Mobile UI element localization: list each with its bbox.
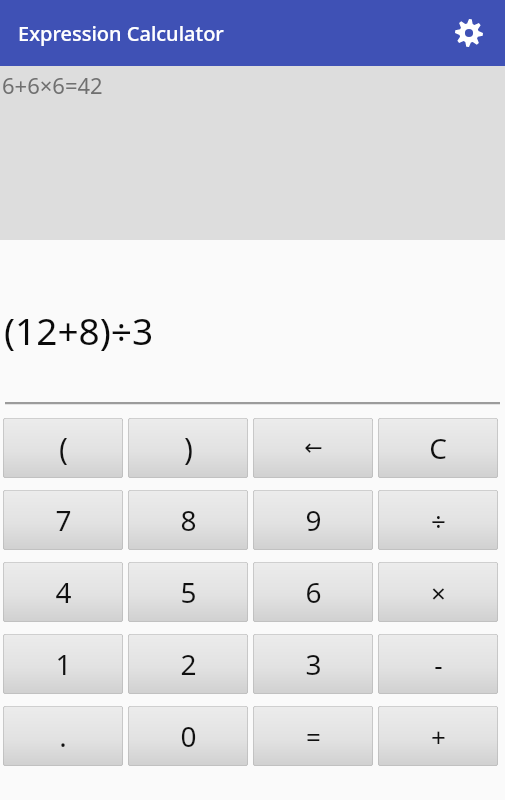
staticText: 2 (180, 645, 197, 683)
staticText: = (306, 719, 321, 754)
button[interactable]: 6+6×6=42 (0, 66, 505, 240)
button[interactable]: ( (3, 418, 123, 478)
staticText: 3 (305, 645, 322, 683)
button[interactable]: 8 (128, 490, 248, 550)
button[interactable]: 7 (3, 490, 123, 550)
button[interactable]: + (378, 706, 498, 766)
button[interactable]: 3 (253, 634, 373, 694)
button[interactable]: ) (128, 418, 248, 478)
button[interactable]: 4 (3, 562, 123, 622)
button[interactable]: = (253, 706, 373, 766)
staticText: ( (59, 428, 68, 469)
staticText: 6 (305, 573, 322, 611)
staticText: ← (304, 435, 323, 461)
button[interactable]: 6 (253, 562, 373, 622)
button[interactable]: 9 (253, 490, 373, 550)
staticText: 9 (305, 501, 322, 539)
button[interactable]: Settings (445, 9, 493, 57)
button[interactable]: 2 (128, 634, 248, 694)
button[interactable]: 1 (3, 634, 123, 694)
staticText: 1 (55, 645, 72, 683)
staticText: 0 (180, 717, 197, 755)
button[interactable]: × (378, 562, 498, 622)
button[interactable]: . (3, 706, 123, 766)
button[interactable]: - (378, 634, 498, 694)
staticText: ÷ (431, 503, 446, 538)
staticText: - (434, 647, 443, 682)
button[interactable]: 5 (128, 562, 248, 622)
button[interactable]: C (378, 418, 498, 478)
staticText: × (431, 575, 446, 610)
button[interactable]: 0 (128, 706, 248, 766)
staticText: 4 (55, 573, 72, 611)
staticText: + (431, 719, 446, 754)
staticText: 7 (55, 501, 72, 539)
staticText: Expression Calculator (18, 20, 224, 47)
staticText: 5 (180, 573, 197, 611)
staticText: . (59, 717, 67, 755)
staticText: 8 (180, 501, 197, 539)
staticText: C (429, 429, 447, 467)
button[interactable]: ÷ (378, 490, 498, 550)
staticText: 6+6×6=42 (2, 70, 103, 100)
staticText: (12+8)÷3 (4, 305, 154, 355)
staticText: ) (184, 428, 193, 469)
button[interactable]: ← (253, 418, 373, 478)
